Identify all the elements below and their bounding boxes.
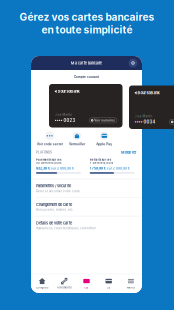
staticText: Comptes — [36, 286, 48, 289]
button[interactable]: Verrouiller — [63, 131, 91, 146]
button[interactable]: Voir numéros — [89, 118, 117, 123]
staticText: Compte courant — [74, 75, 99, 79]
staticText: Changement de carte — [36, 202, 72, 207]
button[interactable]: Menu — [120, 278, 142, 289]
staticText: Verrouiller — [69, 142, 85, 146]
staticText: Menu — [127, 286, 135, 289]
staticText: Apple Pay — [96, 142, 112, 146]
button[interactable]: Voir code secret — [36, 131, 63, 146]
staticText: Lisa Martin — [134, 114, 152, 118]
staticText: Retraits sur les — [90, 158, 111, 161]
staticText: •••• 0034 — [134, 119, 155, 124]
staticText: Virements — [57, 286, 71, 289]
staticText: CB — [84, 286, 88, 289]
button[interactable]: Virements — [53, 278, 75, 289]
button[interactable]: Changement de carte — [31, 198, 142, 216]
button[interactable]: Voir numéros — [169, 119, 174, 124]
button[interactable]: Aide — [127, 56, 138, 70]
staticText: 30 derniers jours — [36, 161, 61, 165]
staticText: Assurances, caractéristiques, calendrier — [36, 227, 96, 230]
staticText: CE — [107, 286, 111, 289]
button[interactable]: Paramètres / sécurité — [31, 179, 142, 197]
staticText: PLAFONDS — [36, 150, 52, 154]
staticText: 7 derniers jours — [90, 161, 113, 165]
button[interactable]: Détails de votre carte — [31, 216, 142, 234]
staticText: BoursoBank — [57, 89, 79, 94]
staticText: Ma carte bancaire — [71, 61, 102, 65]
staticText: Lisa Martin — [54, 113, 72, 116]
staticText: Voir numéros — [94, 119, 115, 122]
staticText: Paramètres / sécurité — [36, 184, 71, 188]
button[interactable]: CE — [98, 278, 120, 289]
staticText: Modifier — [121, 150, 137, 155]
staticText: 932,38 € sur 2 000,00 € — [36, 166, 74, 170]
button[interactable]: Modifier — [121, 150, 137, 155]
staticText: Gérez vos cartes bancaires — [19, 11, 154, 23]
staticText: •••• 0023 — [54, 118, 75, 123]
button[interactable]: Comptes — [31, 278, 53, 289]
staticText: 1 750,00 € sur 2 000,00 € — [90, 166, 130, 170]
staticText: Paiements sur les — [36, 158, 61, 161]
staticText: Gérer et sécuriser votre carte — [36, 189, 80, 193]
staticText: Renouveler, résilier, etc. — [36, 208, 74, 211]
staticText: Voir code secret — [37, 142, 63, 146]
staticText: en toute simplicité — [41, 24, 132, 36]
button[interactable]: CB — [75, 278, 98, 289]
staticText: BoursoBank — [137, 90, 159, 95]
staticText: Détails de votre carte — [36, 221, 72, 225]
button[interactable]: Apple Pay — [91, 131, 118, 146]
